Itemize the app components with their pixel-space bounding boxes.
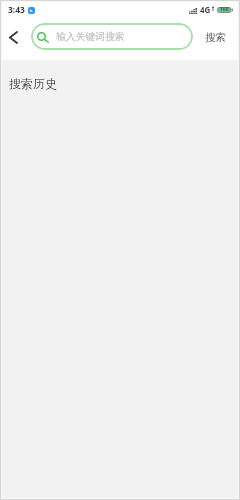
button[interactable]: Back (2, 23, 24, 51)
staticText: 搜索 (205, 31, 226, 44)
staticText: 4G (200, 4, 211, 15)
staticText: 3:43 (8, 4, 25, 16)
staticText: 100 (220, 6, 229, 13)
button[interactable]: 输入关键词搜索 (31, 23, 193, 50)
staticText: 输入关键词搜索 (56, 31, 125, 43)
staticText: 搜索历史 (9, 76, 57, 91)
button[interactable]: 搜索 (196, 24, 234, 51)
